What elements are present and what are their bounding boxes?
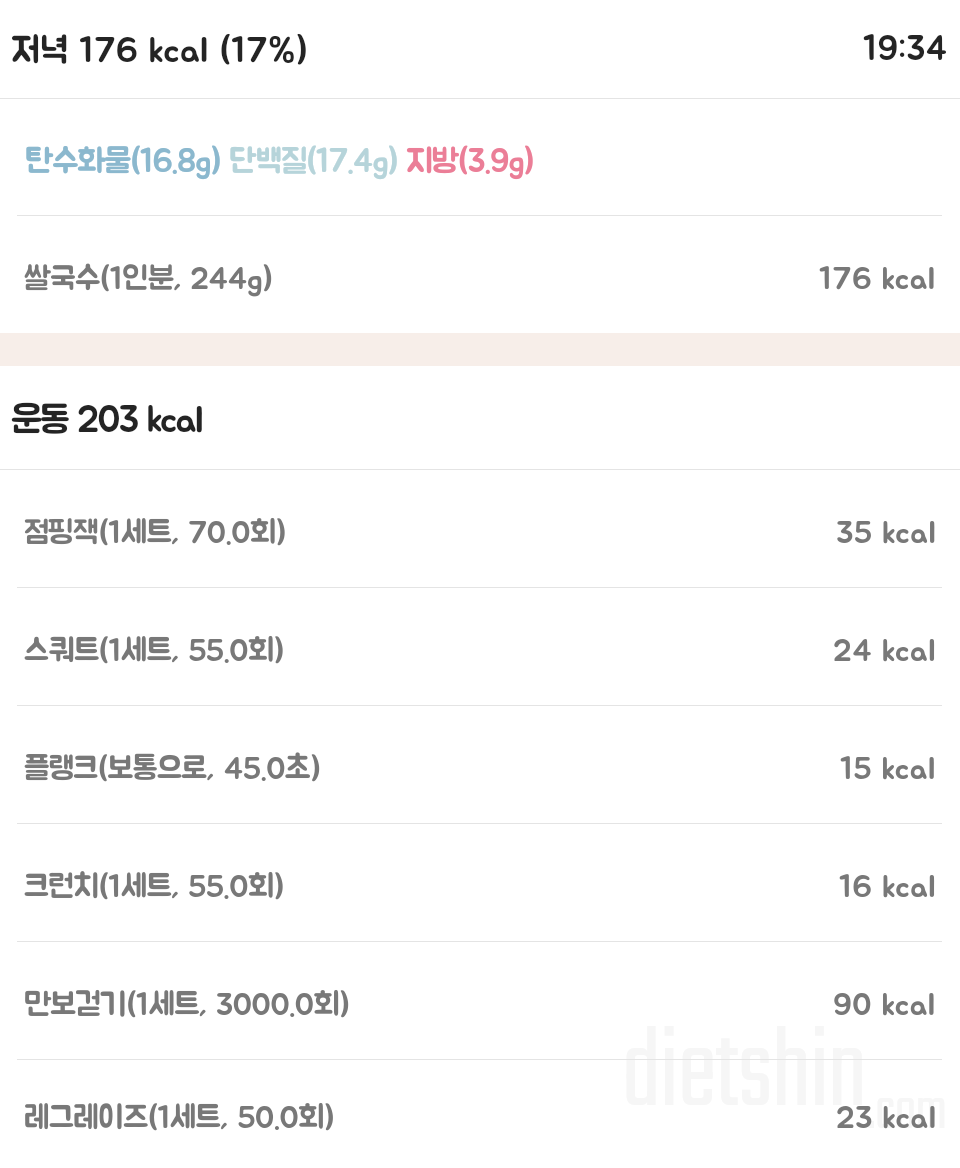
staticText: 운동 203 kcal xyxy=(11,402,202,440)
button[interactable]: 레그레이즈(1세트, 50.0회) xyxy=(0,1060,960,1168)
button[interactable]: 크런치(1세트, 55.0회) xyxy=(0,824,960,941)
staticText: 19:34 xyxy=(863,32,948,67)
staticText: 90 kcal xyxy=(833,989,936,1021)
button[interactable]: 쌀국수(1인분, 244g) xyxy=(0,216,960,333)
staticText: 만보걷기(1세트, 3000.0회) xyxy=(24,989,350,1021)
staticText: 점핑잭(1세트, 70.0회) xyxy=(24,517,286,549)
staticText: 스쿼트(1세트, 55.0회) xyxy=(24,635,284,667)
staticText: 탄수화물(16.8g) 단백질(17.4g) 지방(3.9g) xyxy=(25,146,534,179)
staticText: 16 kcal xyxy=(839,871,936,903)
staticText: 35 kcal xyxy=(836,517,936,549)
staticText: 176 kcal xyxy=(819,263,936,295)
staticText: 쌀국수(1인분, 244g) xyxy=(24,263,273,295)
staticText: 크런치(1세트, 55.0회) xyxy=(24,871,284,903)
button[interactable]: 저녁 176 kcal (17%) xyxy=(0,31,309,67)
staticText: 23 kcal xyxy=(836,1102,936,1134)
staticText: 플랭크(보통으로, 45.0초) xyxy=(24,753,321,785)
staticText: 저녁 176 kcal (17%) xyxy=(11,33,309,69)
staticText: 24 kcal xyxy=(833,635,936,667)
button[interactable]: 운동 203 kcal xyxy=(0,366,960,469)
button[interactable]: 스쿼트(1세트, 55.0회) xyxy=(0,588,960,705)
staticText: dietshin xyxy=(622,992,867,1161)
button[interactable]: 만보걷기(1세트, 3000.0회) xyxy=(0,942,960,1059)
staticText: 레그레이즈(1세트, 50.0회) xyxy=(24,1102,335,1134)
button[interactable]: 점핑잭(1세트, 70.0회) xyxy=(0,470,960,587)
staticText: 15 kcal xyxy=(840,753,936,785)
staticText: .com xyxy=(867,1069,947,1158)
button[interactable]: 플랭크(보통으로, 45.0초) xyxy=(0,706,960,823)
